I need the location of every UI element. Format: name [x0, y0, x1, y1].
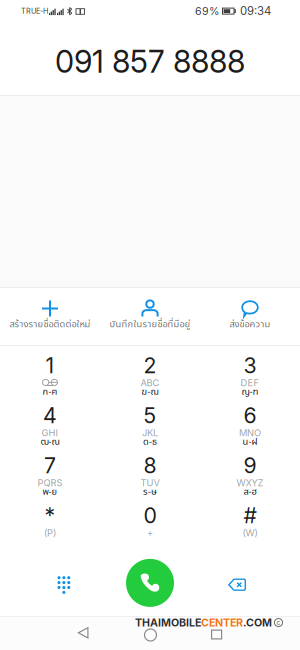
staticText: 5: [143, 403, 156, 428]
staticText: MNO: [239, 427, 261, 438]
staticText: (W): [242, 527, 257, 538]
button[interactable]: Call: [118, 548, 182, 618]
staticText: ร-ษ: [143, 485, 157, 499]
staticText: พ-ย: [42, 485, 57, 499]
staticText: 69%: [195, 4, 219, 17]
button[interactable]: สร้างรายชื่อติดต่อใหม่: [0, 288, 100, 345]
staticText: DEF: [240, 377, 259, 388]
staticText: 3: [243, 353, 256, 378]
staticText: 6: [243, 403, 256, 428]
button[interactable]: ส่งข้อความ: [200, 288, 300, 345]
staticText: 09:34: [240, 4, 271, 18]
staticText: 091 857 8888: [55, 43, 245, 80]
button[interactable]: Backspace: [205, 550, 269, 620]
button[interactable]: 6: [200, 396, 300, 446]
button[interactable]: 0: [100, 496, 200, 546]
staticText: WXYZ: [236, 477, 263, 488]
staticText: CENTER: [201, 616, 243, 629]
staticText: บันทึกในรายชื่อที่มีอยู่: [109, 317, 190, 331]
staticText: ฆ-ฌ: [141, 385, 158, 399]
staticText: 4: [43, 403, 57, 428]
button[interactable]: Keypad: [32, 546, 96, 616]
staticText: ด-ธ: [143, 435, 157, 449]
button[interactable]: 1: [0, 346, 100, 396]
staticText: GHI: [41, 427, 58, 438]
staticText: 8: [143, 453, 156, 478]
button[interactable]: Back: [55, 616, 111, 650]
staticText: JKL: [142, 427, 158, 438]
staticText: 9: [243, 453, 256, 478]
staticText: 7: [44, 453, 56, 478]
staticText: 2: [143, 353, 156, 378]
button[interactable]: #: [200, 496, 300, 546]
button[interactable]: 7: [0, 446, 100, 496]
button[interactable]: Home: [122, 618, 178, 650]
staticText: THAIMOBILE: [135, 616, 201, 629]
button[interactable]: บันทึกในรายชื่อที่มีอยู่: [100, 288, 200, 345]
button[interactable]: 9: [200, 446, 300, 496]
staticText: c: [276, 618, 280, 627]
staticText: ก-ฅ: [42, 385, 57, 399]
button[interactable]: 8: [100, 446, 200, 496]
staticText: ญ-ฑ: [241, 385, 258, 399]
staticText: ส-ฮ: [243, 485, 256, 499]
staticText: +: [147, 527, 153, 538]
staticText: 0: [143, 503, 156, 528]
staticText: TRUE-H: [21, 7, 48, 15]
staticText: .COM: [243, 616, 272, 629]
button[interactable]: 5: [100, 396, 200, 446]
staticText: (P): [44, 527, 56, 538]
staticText: TUV: [140, 477, 159, 488]
staticText: 1: [45, 353, 54, 378]
button[interactable]: *: [0, 496, 100, 546]
staticText: ABC: [140, 377, 159, 388]
button[interactable]: 4: [0, 396, 100, 446]
staticText: PQRS: [37, 477, 62, 488]
button[interactable]: 2: [100, 346, 200, 396]
staticText: สร้างรายชื่อติดต่อใหม่: [9, 317, 90, 331]
staticText: #: [243, 503, 256, 528]
staticText: *: [44, 503, 55, 528]
staticText: น-ฝ: [242, 435, 257, 449]
button[interactable]: Recents: [188, 617, 244, 650]
staticText: ส่งข้อความ: [229, 317, 270, 331]
button[interactable]: 3: [200, 346, 300, 396]
staticText: ฒ-ณ: [40, 435, 59, 449]
